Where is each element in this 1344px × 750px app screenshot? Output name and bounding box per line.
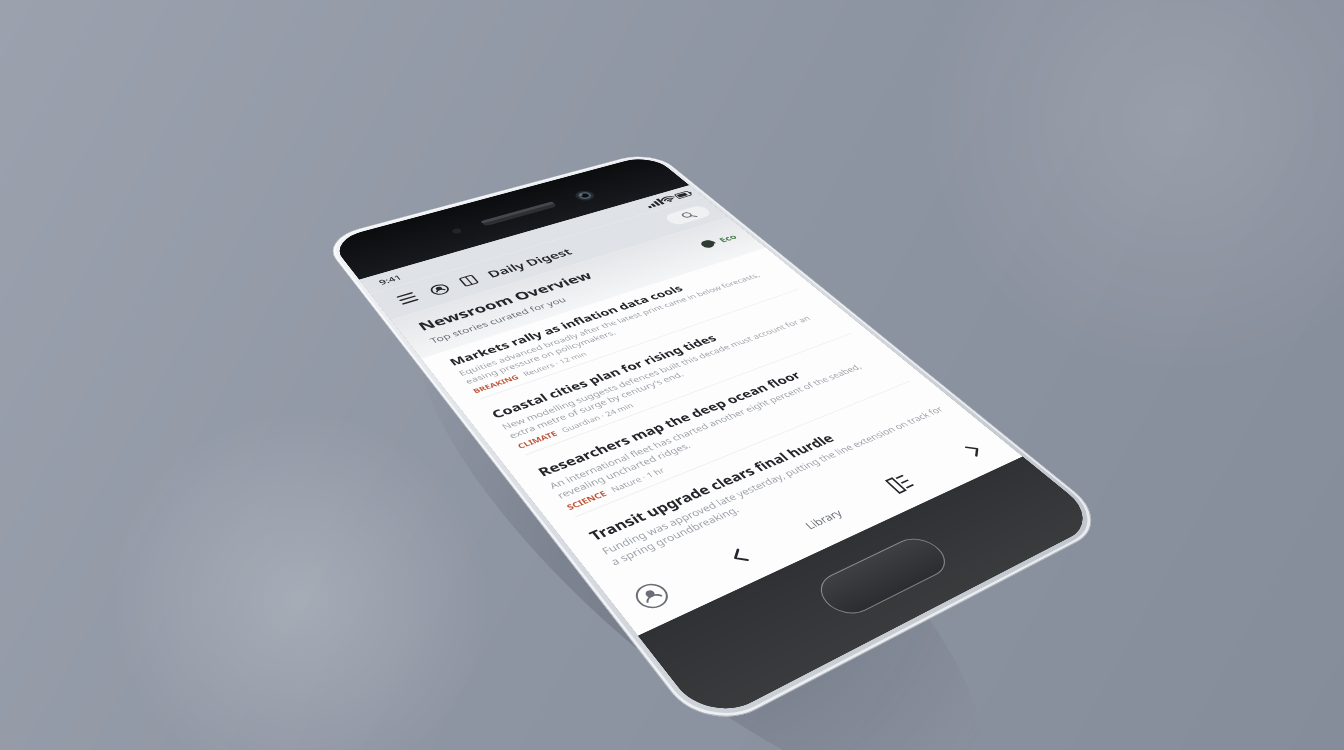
button[interactable]: Library [801, 506, 846, 532]
staticText: Daily Digest [484, 246, 575, 280]
button[interactable]: Home [810, 532, 956, 621]
button[interactable]: Transit upgrade clears final hurdle [557, 380, 979, 587]
staticText: BREAKING [471, 373, 521, 395]
button[interactable]: Researchers map the deep ocean floor [507, 332, 928, 532]
staticText: LOCAL [618, 557, 650, 571]
staticText: Nature · 1 hr [608, 465, 667, 494]
staticText: Funding was approved late yesterday, put… [599, 404, 957, 568]
staticText: City Desk · 2 hr [655, 527, 719, 555]
button[interactable]: Profile [622, 574, 681, 618]
staticText: New modelling suggests defences built th… [499, 308, 838, 441]
staticText: SCIENCE [564, 488, 609, 512]
button[interactable]: Forward [943, 431, 1005, 470]
staticText: Reuters · 12 min [521, 350, 589, 377]
button[interactable]: Back [706, 532, 773, 581]
staticText: CLIMATE [515, 429, 559, 450]
button[interactable]: Bookmarks [447, 268, 491, 293]
staticText: Guardian · 24 min [559, 400, 636, 434]
staticText: Equities advanced broadly after the late… [456, 266, 786, 386]
button[interactable]: Markets rally as inflation data cools [421, 248, 816, 411]
button[interactable]: Account [417, 277, 461, 302]
button[interactable]: Coastal cities plan for rising tides [462, 288, 870, 468]
staticText: Coastal cities plan for rising tides [488, 331, 720, 421]
staticText: Top stories curated for you [427, 294, 569, 345]
staticText: Newsroom Overview [414, 268, 597, 334]
staticText: Researchers map the deep ocean floor [534, 368, 804, 479]
button[interactable]: Menu [384, 285, 431, 313]
button[interactable]: Search [662, 204, 714, 226]
staticText: Eco [716, 232, 739, 244]
staticText: Transit upgrade clears final hurdle [585, 430, 838, 544]
staticText: 9:41 [376, 273, 404, 286]
staticText: Markets rally as inflation data cools [446, 282, 687, 368]
staticText: An international fleet has charted anoth… [546, 354, 895, 501]
button[interactable]: Layout [869, 463, 932, 505]
